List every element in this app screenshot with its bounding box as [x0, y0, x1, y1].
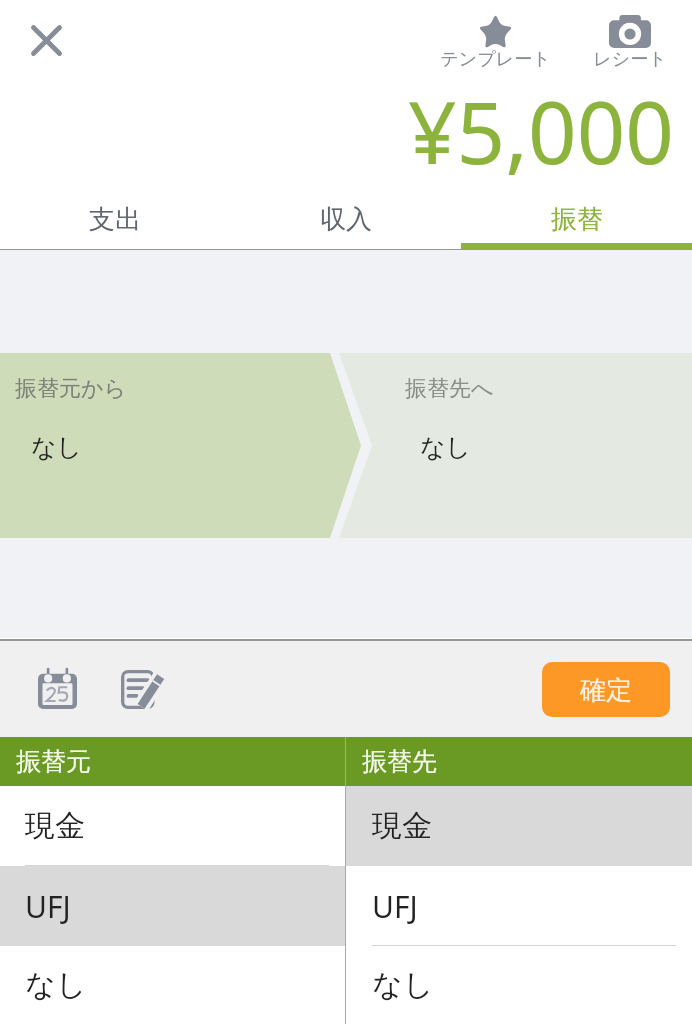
button[interactable]: 現金 [0, 786, 345, 866]
staticText: 振替元 [16, 746, 91, 777]
staticText: ¥5,000 [408, 73, 674, 189]
staticText: なし [372, 966, 434, 1004]
button[interactable]: 振替元から [0, 353, 345, 538]
button[interactable]: Close [22, 16, 70, 64]
staticText: 現金 [372, 807, 432, 845]
button[interactable]: UFJ [0, 866, 345, 946]
staticText: なし [25, 966, 87, 1004]
button[interactable]: レシート [575, 0, 685, 78]
staticText: 振替 [551, 203, 603, 236]
staticText: レシート [593, 48, 667, 71]
staticText: 確定 [580, 674, 632, 707]
button[interactable]: 振替 [461, 186, 692, 250]
staticText: UFJ [372, 886, 418, 927]
staticText: 収入 [320, 203, 372, 236]
staticText: テンプレート [440, 48, 551, 71]
button[interactable]: Date [26, 658, 88, 720]
button[interactable]: テンプレート [440, 0, 551, 78]
staticText: 振替先へ [405, 375, 494, 403]
button[interactable]: 収入 [230, 186, 461, 250]
staticText: 振替元から [15, 375, 127, 403]
button[interactable]: 現金 [346, 786, 692, 866]
button[interactable]: UFJ [346, 866, 692, 946]
staticText: 現金 [25, 807, 85, 845]
staticText: なし [31, 432, 83, 463]
staticText: UFJ [25, 886, 71, 927]
staticText: 振替先 [362, 746, 437, 777]
button[interactable]: なし [0, 946, 345, 1024]
staticText: 支出 [89, 203, 141, 236]
button[interactable]: 確定 [542, 662, 670, 717]
staticText: なし [420, 432, 472, 463]
button[interactable]: 支出 [0, 186, 230, 250]
button[interactable]: 振替先へ [347, 353, 692, 538]
button[interactable]: なし [346, 946, 692, 1024]
button[interactable]: Memo [109, 658, 167, 720]
